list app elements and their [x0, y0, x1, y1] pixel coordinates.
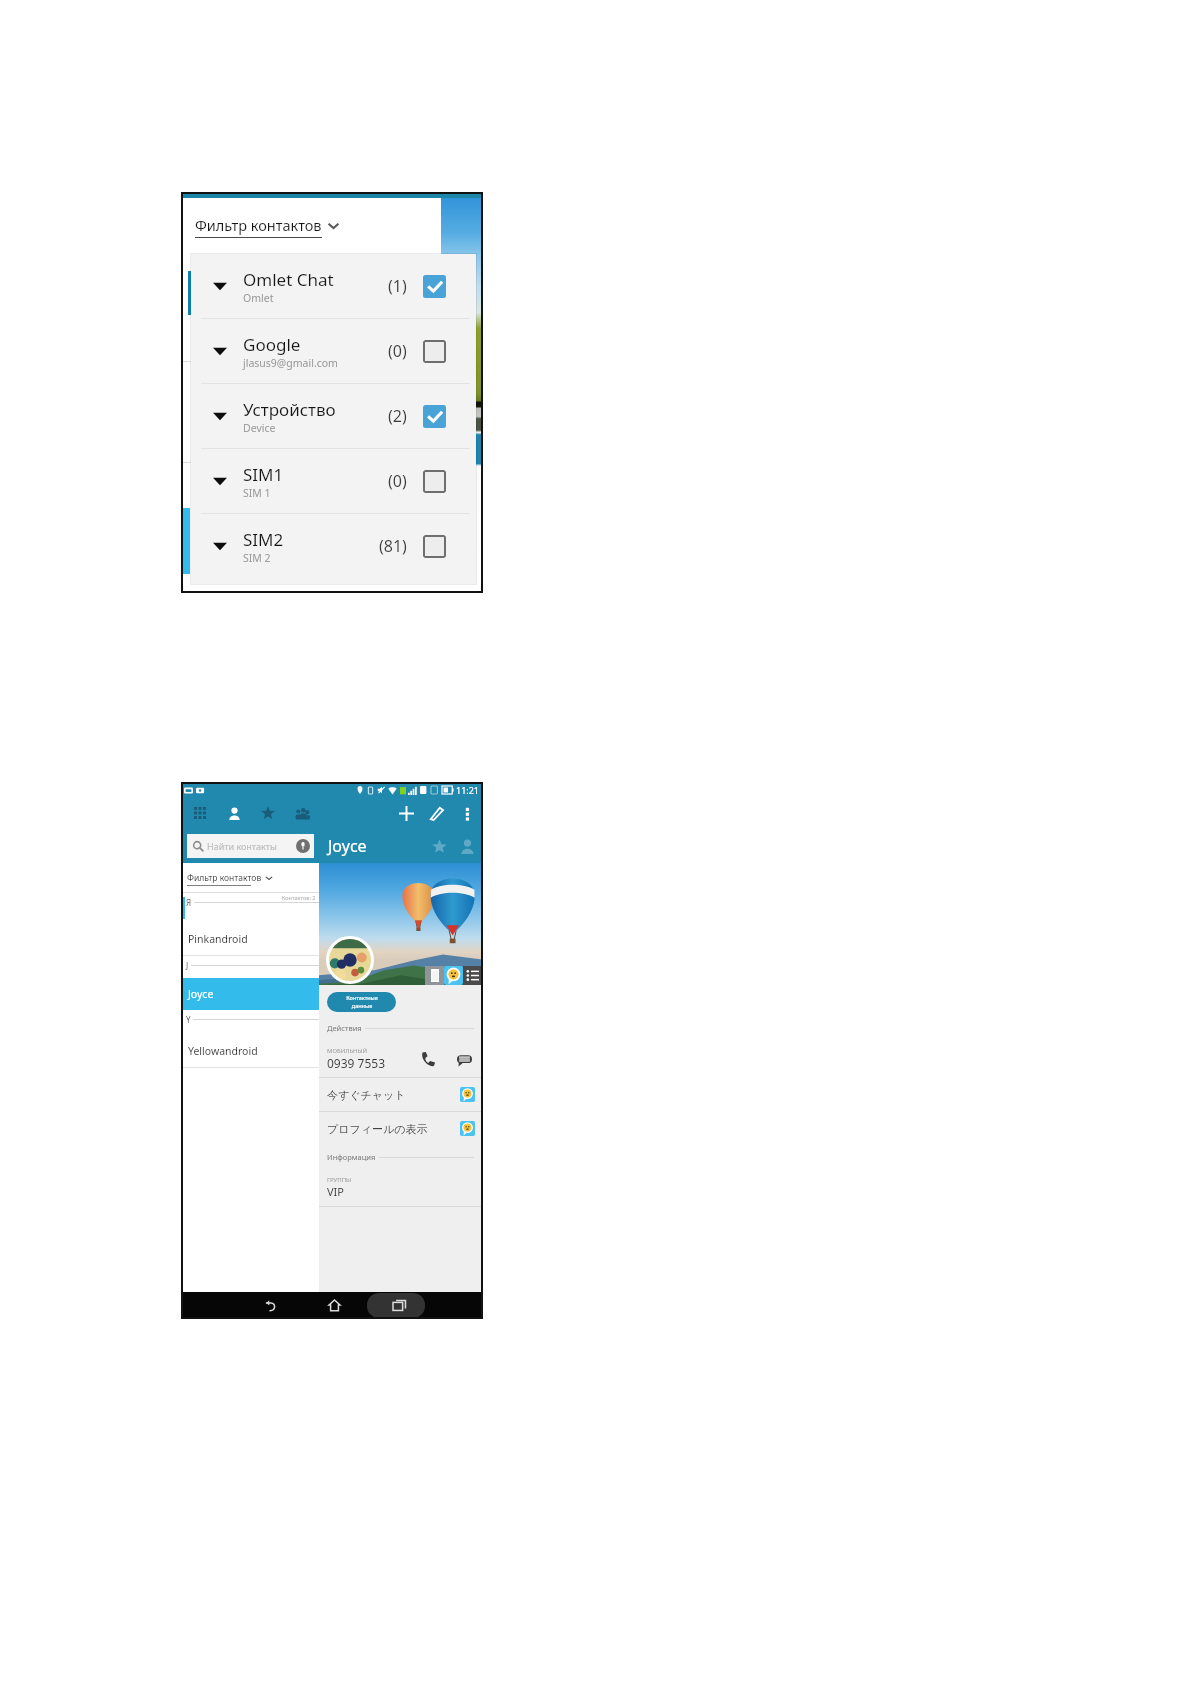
staticText: SIM 2 — [243, 551, 271, 565]
button[interactable]: Google — [191, 319, 476, 383]
button[interactable]: Edit — [425, 801, 449, 825]
staticText: Yellowandroid — [188, 1044, 258, 1058]
staticText: Я — [186, 897, 192, 908]
button[interactable]: Groups — [290, 801, 314, 825]
staticText: プロフィールの表示 — [327, 1122, 428, 1136]
button[interactable] — [423, 535, 446, 558]
button[interactable]: Joyce — [182, 978, 319, 1010]
staticText: Y — [186, 1014, 191, 1025]
staticText: МОБИЛЬНЫЙ — [327, 1047, 368, 1055]
button[interactable]: SIM2 — [191, 514, 476, 578]
button[interactable]: Recent apps — [386, 1292, 412, 1318]
button[interactable]: SIM1 — [191, 449, 476, 513]
staticText: SIM 1 — [243, 486, 271, 500]
staticText: Joyce — [328, 835, 367, 857]
staticText: 11:21 — [456, 784, 480, 796]
button[interactable]: Устройство — [191, 384, 476, 448]
button[interactable]: Найти контакты — [187, 834, 314, 858]
staticText: Omlet Chat — [243, 268, 334, 291]
staticText: Контактные данные — [346, 994, 378, 1010]
button[interactable]: Add contact — [394, 801, 418, 825]
staticText: VIP — [327, 1184, 344, 1199]
staticText: Фильтр контактов — [195, 215, 322, 235]
button[interactable] — [423, 340, 446, 363]
staticText: Информация — [327, 1152, 376, 1162]
staticText: Omlet — [243, 291, 274, 305]
button[interactable]: Home — [321, 1292, 347, 1318]
staticText: Устройство — [243, 398, 336, 421]
staticText: 0939 7553 — [327, 1055, 386, 1071]
staticText: Pinkandroid — [188, 932, 248, 946]
staticText: Фильтр контактов — [187, 872, 262, 884]
button[interactable]: プロフィールの表示 — [319, 1112, 482, 1145]
button[interactable] — [423, 405, 446, 428]
button[interactable]: Контактные данные — [327, 992, 396, 1012]
staticText: jlasus9@gmail.com — [243, 356, 338, 370]
button[interactable]: Pinkandroid — [182, 923, 319, 955]
staticText: J — [186, 960, 189, 971]
staticText: Контактов: 2 — [282, 894, 316, 901]
button[interactable]: Voice search — [296, 839, 310, 853]
button[interactable]: Contacts — [222, 801, 246, 825]
button[interactable]: More options — [455, 801, 479, 825]
staticText: (81) — [379, 535, 407, 557]
staticText: Device — [243, 421, 276, 435]
staticText: (1) — [388, 275, 407, 297]
button[interactable]: МОБИЛЬНЫЙ — [319, 1040, 482, 1077]
button[interactable]: Dialpad — [188, 801, 212, 825]
button[interactable]: Back — [256, 1292, 282, 1318]
staticText: (0) — [388, 340, 407, 362]
button[interactable]: Edit contact — [456, 835, 478, 857]
staticText: (2) — [388, 405, 407, 427]
button[interactable]: 今すぐチャット — [319, 1078, 482, 1111]
button[interactable] — [423, 470, 446, 493]
staticText: Найти контакты — [207, 840, 277, 852]
button[interactable]: Фильтр контактов — [182, 863, 319, 893]
staticText: 今すぐチャット — [327, 1088, 406, 1102]
staticText: Действия — [327, 1023, 362, 1033]
button[interactable]: Omlet Chat — [191, 254, 476, 318]
staticText: ГРУППЫ — [327, 1176, 352, 1184]
button[interactable]: Favorite — [428, 835, 450, 857]
staticText: SIM2 — [243, 528, 284, 551]
staticText: Joyce — [188, 987, 214, 1001]
button[interactable]: Yellowandroid — [182, 1035, 319, 1067]
staticText: Google — [243, 333, 301, 356]
button[interactable] — [423, 275, 446, 298]
staticText: (0) — [388, 470, 407, 492]
button[interactable]: Favorites — [256, 801, 280, 825]
button[interactable]: Call — [417, 1048, 439, 1070]
staticText: SIM1 — [243, 463, 284, 486]
button[interactable]: Send message — [453, 1048, 475, 1070]
